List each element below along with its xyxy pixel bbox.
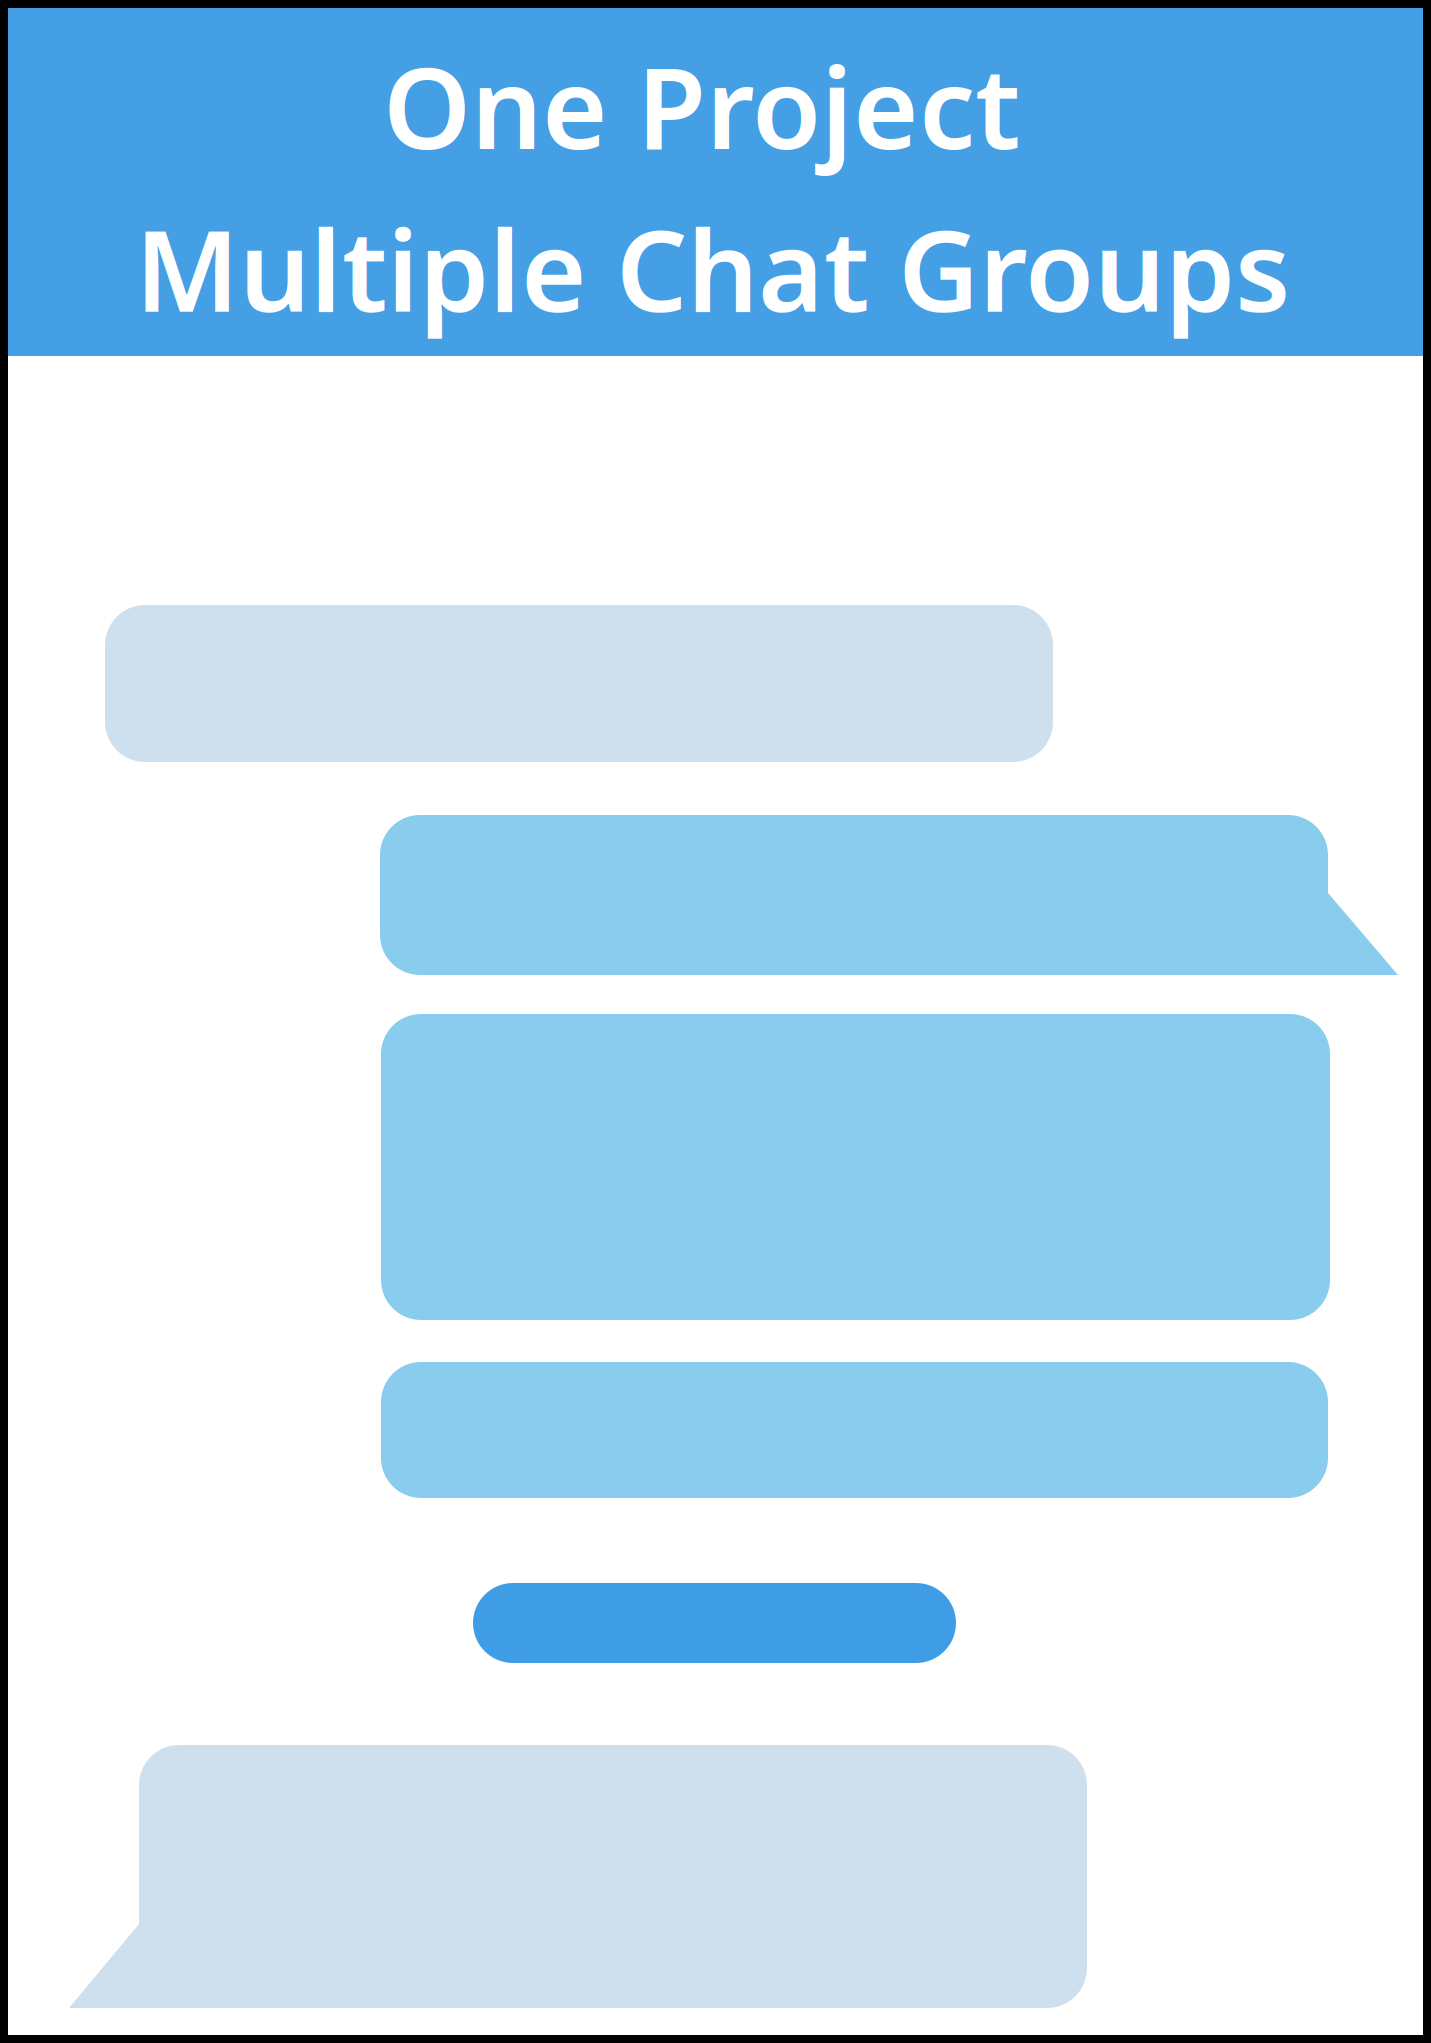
staticText: One Project xyxy=(383,31,1020,180)
staticText: Multiple Chat Groups xyxy=(135,194,1290,343)
